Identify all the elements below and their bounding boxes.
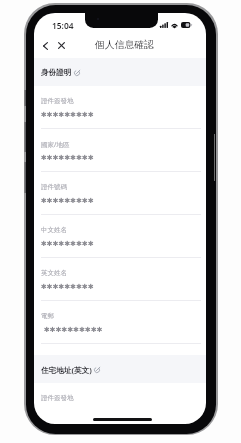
staticText: 證件簽發地: [41, 394, 74, 402]
button[interactable]: 證件號碼: [34, 172, 206, 215]
button[interactable]: 證件簽發地: [34, 86, 206, 129]
staticText: 15:04: [52, 20, 74, 31]
staticText: 證件號碼: [41, 183, 67, 191]
button[interactable]: 英文姓名: [34, 258, 206, 301]
staticText: 中文姓名: [41, 226, 67, 234]
staticText: 住宅地址(英文): [41, 365, 92, 375]
staticText: ✱✱✱✱✱✱✱✱✱: [41, 197, 94, 205]
staticText: 電郵: [41, 312, 54, 320]
staticText: ✱✱✱✱✱✱✱✱✱: [41, 111, 94, 119]
button[interactable]: Edit: [73, 69, 81, 77]
staticText: 證件簽發地: [41, 97, 74, 105]
button[interactable]: 證件簽發地: [34, 383, 206, 424]
button[interactable]: Back: [37, 37, 54, 54]
staticText: ✱✱✱✱✱✱✱✱✱✱: [44, 326, 103, 334]
staticText: ✱✱✱✱✱✱✱✱✱: [41, 283, 94, 291]
staticText: 國家/地區: [41, 140, 70, 149]
button[interactable]: 身份證明: [34, 58, 206, 86]
staticText: 個人信息確認: [95, 39, 154, 51]
staticText: 身份證明: [41, 68, 72, 78]
button[interactable]: 中文姓名: [34, 215, 206, 258]
button[interactable]: Close: [53, 37, 70, 54]
button[interactable]: 國家/地區: [34, 129, 206, 172]
staticText: ✱✱✱✱✱✱✱✱✱: [41, 240, 94, 248]
button[interactable]: 電郵: [34, 301, 206, 344]
button[interactable]: 住宅地址(英文): [34, 355, 206, 383]
button[interactable]: Edit: [93, 366, 101, 374]
staticText: ✱✱✱✱✱✱✱✱✱: [41, 154, 94, 162]
staticText: 英文姓名: [41, 269, 67, 277]
